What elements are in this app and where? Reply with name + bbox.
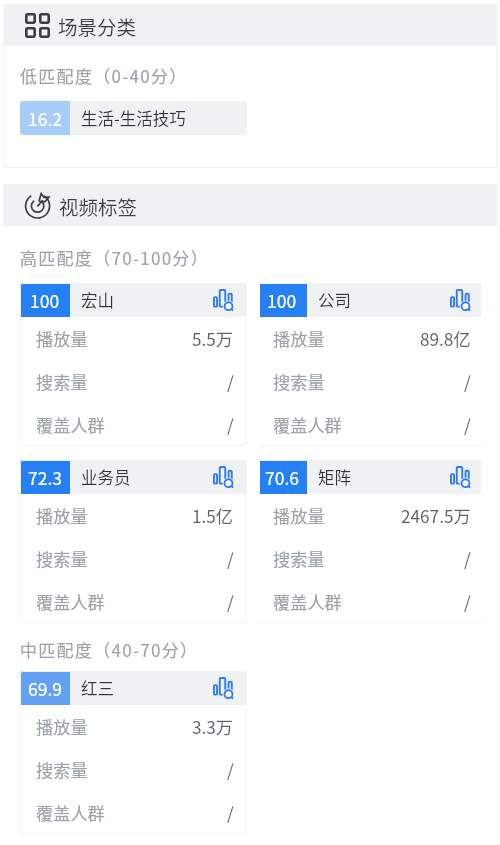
- staticText: 低匹配度（0-40分）: [20, 63, 188, 88]
- staticText: /: [227, 369, 234, 394]
- staticText: 播放量: [273, 503, 325, 528]
- staticText: 宏山: [81, 288, 114, 312]
- staticText: /: [464, 546, 471, 571]
- staticText: 2467.5万: [401, 503, 471, 528]
- button[interactable]: 场景分类: [3, 4, 497, 46]
- staticText: 5.5万: [192, 326, 234, 351]
- staticText: 生活-生活技巧: [81, 106, 186, 130]
- staticText: /: [227, 412, 234, 437]
- other: Analytics: [213, 466, 234, 488]
- staticText: 搜索量: [273, 369, 325, 394]
- staticText: /: [227, 800, 234, 825]
- staticText: 搜索量: [36, 369, 88, 394]
- staticText: 播放量: [36, 503, 88, 528]
- staticText: 覆盖人群: [36, 589, 105, 614]
- staticText: 播放量: [273, 326, 325, 351]
- button[interactable]: 视频标签: [3, 184, 497, 226]
- staticText: 场景分类: [58, 12, 137, 40]
- staticText: 69.9: [28, 676, 63, 701]
- staticText: /: [464, 369, 471, 394]
- staticText: 播放量: [36, 326, 88, 351]
- staticText: 搜索量: [36, 757, 88, 782]
- staticText: 中匹配度（40-70分）: [20, 637, 199, 662]
- staticText: 1.5亿: [192, 503, 234, 528]
- staticText: /: [227, 757, 234, 782]
- staticText: 89.8亿: [420, 326, 471, 351]
- staticText: 覆盖人群: [36, 412, 105, 437]
- button[interactable]: 72.3: [20, 460, 247, 623]
- staticText: 100: [30, 288, 60, 313]
- staticText: 业务员: [81, 465, 131, 489]
- staticText: /: [227, 546, 234, 571]
- button[interactable]: 16.2: [20, 101, 247, 135]
- staticText: 高匹配度（70-100分）: [20, 245, 209, 270]
- other: Analytics: [450, 466, 471, 488]
- staticText: 搜索量: [273, 546, 325, 571]
- staticText: /: [464, 412, 471, 437]
- staticText: 16.2: [28, 106, 63, 131]
- staticText: /: [227, 589, 234, 614]
- staticText: 公司: [318, 288, 351, 312]
- button[interactable]: 69.9: [20, 671, 247, 834]
- button[interactable]: 100: [20, 283, 247, 446]
- other: Analytics: [213, 289, 234, 311]
- staticText: /: [464, 589, 471, 614]
- staticText: 红三: [81, 676, 114, 700]
- other: Analytics: [213, 677, 234, 699]
- staticText: 100: [267, 288, 297, 313]
- staticText: 视频标签: [59, 192, 138, 220]
- staticText: 播放量: [36, 714, 88, 739]
- button[interactable]: 70.6: [260, 460, 481, 623]
- staticText: 矩阵: [318, 465, 351, 489]
- staticText: 覆盖人群: [36, 800, 105, 825]
- staticText: 70.6: [265, 465, 300, 490]
- button[interactable]: 100: [260, 283, 481, 446]
- staticText: 搜索量: [36, 546, 88, 571]
- staticText: 3.3万: [192, 714, 234, 739]
- staticText: 覆盖人群: [273, 412, 342, 437]
- staticText: 72.3: [28, 465, 63, 490]
- staticText: 覆盖人群: [273, 589, 342, 614]
- other: Analytics: [450, 289, 471, 311]
